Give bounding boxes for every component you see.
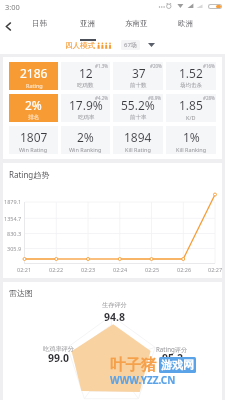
button[interactable]: 1894 bbox=[113, 126, 163, 154]
staticText: Rating趋势 bbox=[9, 169, 50, 180]
staticText: 生存评分 bbox=[102, 301, 127, 309]
staticText: 67场 bbox=[124, 41, 137, 49]
staticText: 2186 bbox=[20, 65, 48, 81]
staticText: 吃鸡数 bbox=[77, 82, 94, 89]
staticText: 1.52 bbox=[179, 65, 203, 81]
staticText: 02:24 bbox=[113, 266, 128, 273]
staticText: #8.9% bbox=[148, 95, 162, 101]
staticText: 雷达图 bbox=[9, 288, 33, 298]
staticText: 2% bbox=[77, 129, 94, 145]
button[interactable]: 55.2% bbox=[113, 94, 163, 122]
staticText: 830.3 bbox=[7, 230, 22, 237]
staticText: 1.85 bbox=[179, 97, 203, 113]
staticText: 吃鸡率评分 bbox=[43, 345, 74, 353]
staticText: 场均击杀 bbox=[180, 82, 202, 89]
staticText: 前十率 bbox=[130, 114, 147, 121]
staticText: 37 bbox=[132, 65, 146, 81]
button[interactable]: 1.85 bbox=[166, 94, 216, 122]
staticText: 1894 bbox=[124, 129, 152, 145]
staticText: 欧洲 bbox=[178, 19, 193, 28]
staticText: 55.2% bbox=[121, 97, 155, 113]
button[interactable]: 37 bbox=[113, 62, 163, 90]
staticText: Kill Ranking bbox=[176, 146, 207, 153]
staticText: 12 bbox=[79, 65, 93, 81]
staticText: 94.8 bbox=[104, 310, 125, 324]
button[interactable]: 2186 bbox=[9, 62, 58, 90]
staticText: #28% bbox=[203, 95, 215, 101]
staticText: 02:25 bbox=[145, 266, 160, 273]
staticText: 305.9 bbox=[7, 245, 22, 252]
staticText: 叶子猪 bbox=[110, 355, 157, 375]
button[interactable]: 1% bbox=[166, 126, 216, 154]
staticText: 四人模式 bbox=[65, 41, 95, 50]
staticText: 02:26 bbox=[177, 266, 192, 273]
staticText: 2% bbox=[25, 97, 42, 113]
staticText: 95.2 bbox=[162, 351, 183, 365]
staticText: 吃鸡率 bbox=[78, 114, 95, 121]
button[interactable]: 12 bbox=[61, 62, 110, 90]
button[interactable]: 1.52 bbox=[166, 62, 216, 90]
staticText: 亚洲 bbox=[80, 19, 95, 28]
staticText: #20% bbox=[150, 63, 162, 69]
staticText: 02:27 bbox=[208, 266, 223, 273]
staticText: 排名 bbox=[28, 114, 39, 121]
staticText: 东南亚 bbox=[125, 19, 148, 28]
button[interactable]: 欧洲 bbox=[161, 14, 210, 38]
button[interactable]: 亚洲 bbox=[63, 14, 112, 38]
staticText: 1% bbox=[183, 129, 200, 145]
staticText: 1807 bbox=[20, 129, 48, 145]
staticText: 前十数 bbox=[130, 82, 147, 89]
staticText: 游戏网 bbox=[161, 358, 194, 372]
button[interactable]: 1807 bbox=[9, 126, 58, 154]
staticText: Kill Rating bbox=[125, 146, 151, 153]
staticText: #16% bbox=[203, 63, 215, 69]
staticText: Rating评分 bbox=[156, 345, 188, 353]
button[interactable]: 2% bbox=[9, 94, 58, 122]
button[interactable]: 17.9% bbox=[61, 94, 110, 122]
button[interactable]: Back bbox=[0, 18, 16, 34]
staticText: 02:23 bbox=[81, 266, 96, 273]
button[interactable]: 2% bbox=[61, 126, 110, 154]
staticText: WWW.YZZ.CN bbox=[110, 373, 176, 387]
staticText: 1879.1 bbox=[4, 198, 22, 205]
staticText: 02:21 bbox=[17, 266, 32, 273]
staticText: K/D bbox=[186, 114, 196, 121]
staticText: 99.0 bbox=[48, 351, 69, 365]
button[interactable]: 东南亚 bbox=[112, 14, 161, 38]
staticText: 3:00 bbox=[5, 2, 20, 12]
staticText: Win Rating bbox=[19, 146, 48, 153]
staticText: Rating bbox=[26, 82, 43, 89]
staticText: Win Ranking bbox=[69, 146, 102, 153]
staticText: #4.2% bbox=[95, 95, 109, 101]
staticText: 日韩 bbox=[32, 19, 47, 28]
staticText: 02:22 bbox=[49, 266, 64, 273]
staticText: #1.3% bbox=[95, 63, 109, 69]
staticText: 1354.7 bbox=[4, 215, 22, 222]
staticText: 17.9% bbox=[69, 97, 103, 113]
button[interactable]: 日韩 bbox=[15, 14, 63, 38]
